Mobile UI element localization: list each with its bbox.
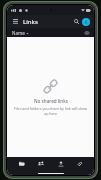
button[interactable]: Name [11, 29, 30, 37]
button[interactable]: Files [13, 158, 30, 170]
button[interactable]: Switch to grid view [83, 29, 90, 36]
button[interactable]: Links [71, 158, 88, 170]
button[interactable]: Search [72, 17, 81, 26]
staticText: No shared links [34, 98, 68, 104]
button[interactable]: Open navigation menu [11, 17, 20, 26]
staticText: Links [23, 18, 38, 26]
button[interactable]: Account [82, 18, 90, 26]
button[interactable]: Shared [32, 158, 49, 170]
button[interactable]: Upload [52, 158, 69, 170]
staticText: Files and folders you share by link will… [13, 106, 88, 116]
staticText: Name [12, 30, 25, 36]
